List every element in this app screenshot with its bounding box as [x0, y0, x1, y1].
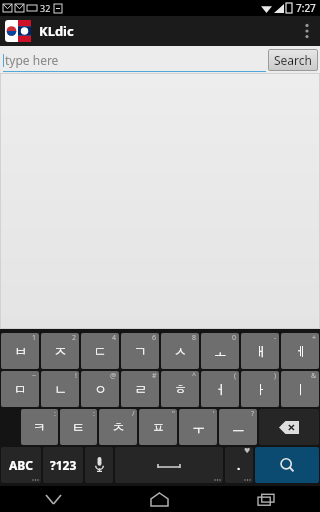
staticText: ! — [75, 371, 77, 381]
staticText: ♥ — [244, 447, 251, 455]
staticText: . — [237, 457, 241, 473]
staticText: ㅍ — [152, 419, 165, 435]
staticText: ㅎ — [174, 381, 187, 397]
button[interactable]: ㄱ — [121, 333, 159, 369]
staticText: ) — [274, 371, 277, 381]
button[interactable]: ㅔ — [281, 333, 319, 369]
staticText: 32 — [40, 2, 51, 14]
staticText: ㅋ — [33, 419, 46, 435]
staticText: & — [311, 371, 317, 381]
staticText: : — [93, 409, 95, 419]
button[interactable]: ㅐ — [241, 333, 279, 369]
staticText: 8 — [192, 333, 197, 343]
button[interactable]: ㅌ — [60, 409, 97, 445]
button[interactable]: Recent apps — [213, 486, 320, 512]
staticText: ~ — [32, 371, 37, 381]
staticText: 2 — [72, 333, 77, 343]
staticText: ( — [234, 371, 237, 381]
button[interactable]: Backspace — [259, 409, 319, 445]
staticText: 4 — [112, 333, 117, 343]
staticText: ㅏ — [254, 381, 267, 397]
button[interactable]: ㅗ — [201, 333, 239, 369]
button[interactable]: ㅅ — [161, 333, 199, 369]
staticText: ㅅ — [174, 343, 187, 359]
button[interactable]: ㅜ — [179, 409, 217, 445]
staticText: + — [312, 333, 317, 343]
button[interactable]: ABC — [1, 447, 41, 483]
button[interactable]: . — [225, 447, 253, 483]
button[interactable]: Voice input — [85, 447, 113, 483]
staticText: 0 — [232, 333, 237, 343]
button[interactable]: ㅍ — [139, 409, 177, 445]
staticText: KLdic — [39, 22, 74, 40]
button[interactable]: ㅈ — [41, 333, 79, 369]
staticText: - — [274, 333, 277, 343]
staticText: ' — [213, 409, 215, 419]
button[interactable]: Home — [106, 486, 213, 512]
staticText: ㅂ — [14, 343, 27, 359]
button[interactable]: ㄷ — [81, 333, 119, 369]
staticText: ? — [251, 409, 255, 419]
button[interactable]: ㅋ — [21, 409, 58, 445]
staticText: ㅗ — [214, 343, 227, 359]
button[interactable]: ㅎ — [161, 371, 199, 407]
staticText: ㅈ — [54, 343, 67, 359]
button[interactable]: ㅂ — [1, 333, 39, 369]
staticText: ?123 — [50, 457, 77, 473]
staticText: ABC — [9, 457, 33, 473]
staticText: ㅁ — [14, 381, 27, 397]
button[interactable]: Hide keyboard — [0, 486, 106, 512]
staticText: ㅔ — [294, 343, 307, 359]
button[interactable]: type here — [3, 46, 266, 73]
button[interactable]: ㄴ — [41, 371, 79, 407]
staticText: # — [152, 371, 157, 381]
staticText: type here — [5, 52, 59, 68]
button[interactable]: ㅊ — [99, 409, 137, 445]
staticText: Search — [274, 52, 312, 68]
staticText: ㅌ — [72, 419, 85, 435]
button[interactable]: ㅡ — [219, 409, 257, 445]
button[interactable]: ㅇ — [81, 371, 119, 407]
staticText: @ — [110, 371, 117, 381]
staticText: ㄹ — [134, 381, 147, 397]
staticText: " — [172, 409, 175, 419]
button[interactable]: ㅁ — [1, 371, 39, 407]
button[interactable]: ㅏ — [241, 371, 279, 407]
button[interactable]: More options — [294, 16, 320, 46]
button[interactable]: ?123 — [43, 447, 83, 483]
staticText: : — [54, 409, 56, 419]
staticText: / — [132, 409, 135, 419]
staticText: ㅡ — [232, 419, 245, 435]
staticText: ㅜ — [192, 419, 205, 435]
staticText: ^ — [192, 371, 197, 381]
staticText: ㅣ — [294, 381, 307, 397]
staticText: ㅇ — [94, 381, 107, 397]
staticText: 1 — [32, 333, 37, 343]
button[interactable]: ㅓ — [201, 371, 239, 407]
staticText: ㅊ — [112, 419, 125, 435]
staticText: 6 — [152, 333, 157, 343]
staticText: ㄴ — [54, 381, 67, 397]
staticText: ㅐ — [254, 343, 267, 359]
button[interactable]: ㅣ — [281, 371, 319, 407]
button[interactable]: ㄹ — [121, 371, 159, 407]
button[interactable]: Space — [115, 447, 223, 483]
staticText: ㅓ — [214, 381, 227, 397]
staticText: ㄱ — [134, 343, 147, 359]
button[interactable]: Search — [268, 49, 318, 71]
staticText: ㄷ — [94, 343, 107, 359]
button[interactable]: Search — [255, 447, 319, 483]
staticText: 7:27 — [296, 1, 316, 15]
